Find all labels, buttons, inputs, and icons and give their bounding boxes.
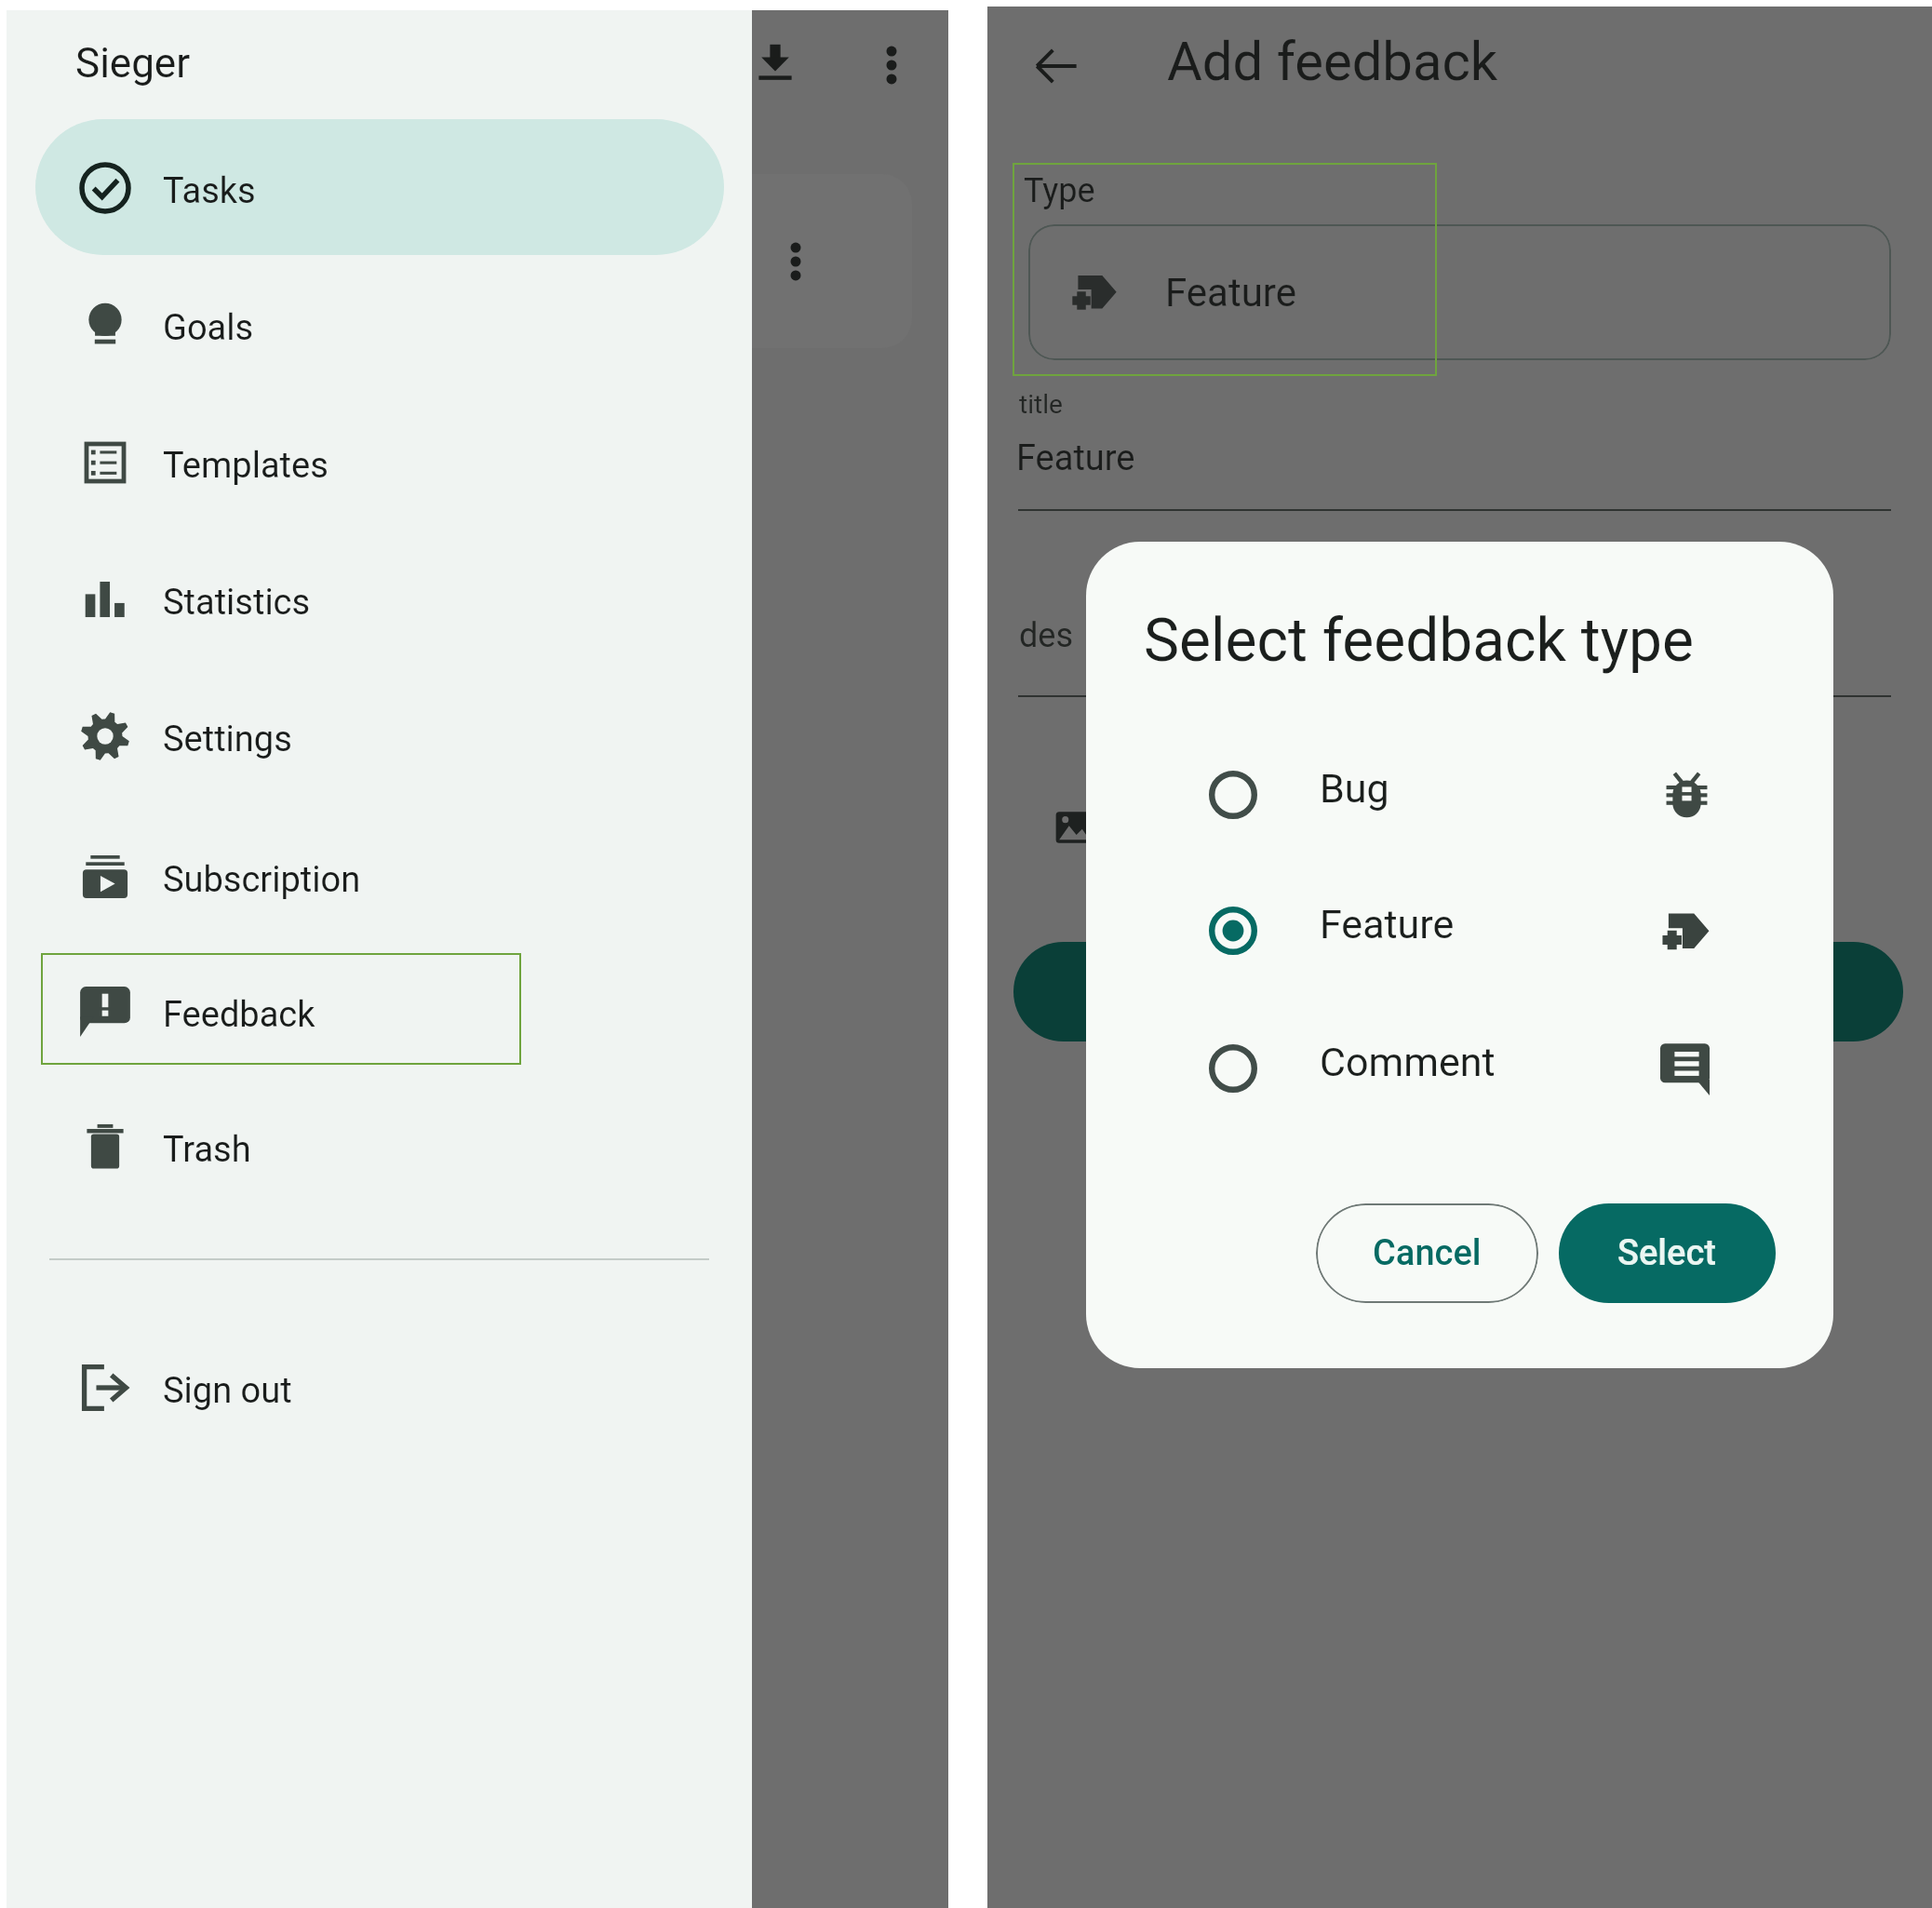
staticText: Subscription xyxy=(163,859,361,901)
staticText: Add feedback xyxy=(1167,30,1498,93)
staticText: Select xyxy=(1617,1232,1717,1274)
button[interactable]: Task options xyxy=(775,241,816,282)
staticText: Templates xyxy=(163,445,329,487)
staticText: Tasks xyxy=(163,170,256,212)
staticText: Settings xyxy=(163,719,292,760)
button[interactable]: Feedback xyxy=(35,944,724,1080)
staticText: Sign out xyxy=(163,1370,292,1412)
button[interactable]: Feature xyxy=(1086,870,1833,991)
staticText: Cancel xyxy=(1373,1232,1482,1274)
staticText: Goals xyxy=(163,307,254,349)
button[interactable]: Templates xyxy=(35,395,724,531)
staticText: Comment xyxy=(1320,1039,1496,1085)
button[interactable]: Statistics xyxy=(35,531,724,667)
staticText: Trash xyxy=(163,1129,251,1171)
button[interactable]: Select xyxy=(1559,1203,1776,1303)
button[interactable]: Download xyxy=(751,38,799,87)
staticText: Bug xyxy=(1320,765,1389,812)
staticText: Feedback xyxy=(163,994,315,1036)
staticText: Sieger xyxy=(75,39,191,87)
button[interactable]: Tasks xyxy=(35,120,724,256)
button[interactable]: Back xyxy=(1025,34,1088,98)
button[interactable]: Comment xyxy=(1086,1008,1833,1129)
button[interactable]: Bug xyxy=(1086,734,1833,855)
button[interactable] xyxy=(35,119,724,255)
button[interactable]: Trash xyxy=(35,1079,724,1215)
staticText: Feature xyxy=(1016,437,1135,479)
button[interactable]: Settings xyxy=(35,668,724,804)
staticText: title xyxy=(1019,389,1063,420)
button[interactable]: More options xyxy=(867,41,916,89)
button[interactable] xyxy=(1013,942,1903,1041)
staticText: Statistics xyxy=(163,582,311,624)
button[interactable]: Feature xyxy=(1028,224,1891,360)
staticText: Type xyxy=(1024,171,1095,210)
button[interactable]: Sign out xyxy=(35,1320,724,1456)
button[interactable]: Goals xyxy=(35,257,724,393)
staticText: Feature xyxy=(1320,901,1455,947)
staticText: des xyxy=(1019,616,1073,655)
button[interactable]: Subscription xyxy=(35,809,724,945)
button[interactable]: Cancel xyxy=(1316,1203,1538,1303)
staticText: Feature xyxy=(1165,270,1296,316)
staticText: Select feedback type xyxy=(1144,606,1694,676)
